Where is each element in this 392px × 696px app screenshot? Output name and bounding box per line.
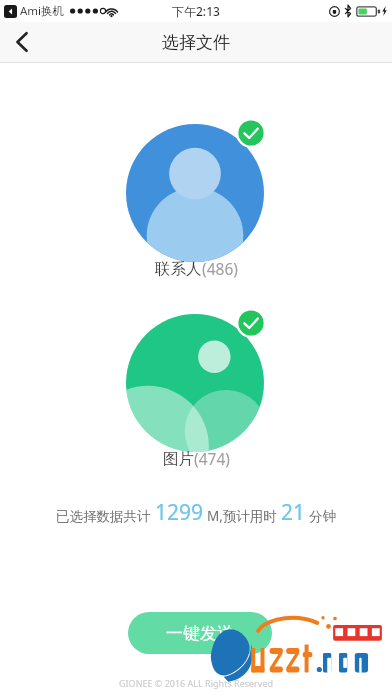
staticText: 选择文件 [162, 32, 230, 53]
staticText: 已选择数据共计 [56, 508, 151, 525]
staticText: 一键发送 [166, 623, 234, 644]
staticText: (486) [202, 258, 238, 279]
staticText: 分钟 [309, 508, 336, 525]
staticText: 图片 [163, 449, 194, 469]
staticText: Ami换机 [20, 3, 65, 19]
staticText: GIONEE © 2016 ALL Rights Reserved [0, 677, 392, 689]
button[interactable]: 联系人 486, selected [126, 118, 270, 262]
staticText: 下午2:13 [172, 3, 220, 19]
button[interactable]: Back [0, 22, 44, 62]
staticText: (474) [194, 448, 230, 469]
button[interactable]: 一键发送 [128, 612, 272, 654]
button[interactable]: 图片 474, selected [126, 308, 270, 452]
staticText: 21 [281, 498, 306, 527]
staticText: 1299 [155, 498, 204, 527]
staticText: M,预计用时 [207, 507, 277, 525]
staticText: 联系人 [155, 259, 202, 279]
